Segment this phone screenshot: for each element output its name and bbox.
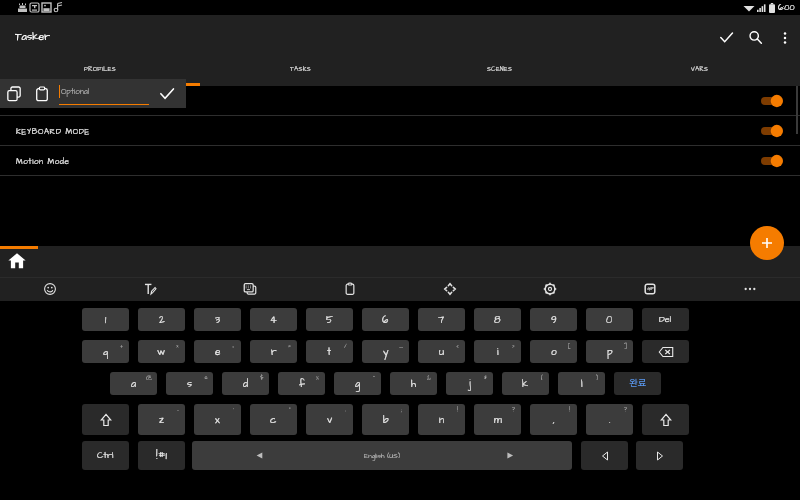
button[interactable]: l <box>558 372 605 395</box>
button[interactable]: v <box>306 404 353 435</box>
staticText: 2 <box>159 313 165 327</box>
button[interactable]: 2 <box>138 308 185 331</box>
staticText: @ <box>146 374 153 382</box>
staticText: % <box>316 374 320 382</box>
button[interactable]: gif <box>600 278 700 300</box>
button[interactable]: settings <box>500 278 600 300</box>
button[interactable]: Paste <box>33 85 51 103</box>
button[interactable]: s <box>166 372 213 395</box>
staticText: . <box>609 413 611 427</box>
staticText: o <box>551 345 557 359</box>
staticText: < <box>456 342 459 350</box>
button[interactable]: x <box>194 404 241 435</box>
button[interactable]: . <box>586 404 633 435</box>
button[interactable]: t <box>306 340 353 363</box>
button[interactable]: f <box>278 372 325 395</box>
button[interactable]: Copy <box>5 85 23 103</box>
button[interactable]: More options <box>770 23 799 52</box>
staticText: ^ <box>373 374 375 382</box>
button[interactable]: !#1 <box>138 441 185 470</box>
button[interactable]: Confirm <box>158 85 176 103</box>
button[interactable]: g <box>334 372 381 395</box>
button[interactable]: VARS <box>600 60 800 86</box>
button[interactable]: h <box>390 372 437 395</box>
staticText: 7 <box>438 313 445 327</box>
staticText: : <box>345 406 347 414</box>
staticText: = <box>288 342 291 350</box>
staticText: u <box>439 345 445 359</box>
button[interactable]: , <box>530 404 577 435</box>
staticText: g <box>355 377 361 391</box>
button[interactable]: Space <box>192 441 572 470</box>
button[interactable]: move <box>400 278 500 300</box>
button[interactable]: PROFILES <box>0 60 200 86</box>
button[interactable]: a <box>110 372 157 395</box>
button[interactable]: m <box>474 404 521 435</box>
button[interactable]: SCENES <box>400 60 600 86</box>
button[interactable]: r <box>250 340 297 363</box>
button[interactable]: 6 <box>362 308 409 331</box>
button[interactable]: Ctrl <box>82 441 129 470</box>
button[interactable]: TASKS <box>200 60 400 86</box>
button[interactable]: emoji <box>0 278 100 300</box>
button[interactable]: Home <box>6 249 28 271</box>
button[interactable]: KEYBOARD MODE <box>0 116 800 146</box>
staticText: TASKS <box>290 65 311 73</box>
button[interactable]: more <box>700 278 800 300</box>
button[interactable]: Done <box>712 23 741 52</box>
button[interactable]: 8 <box>474 308 521 331</box>
button[interactable]: 0 <box>586 308 633 331</box>
button[interactable]: 4 <box>250 308 297 331</box>
button[interactable]: handwrite <box>100 278 200 300</box>
button[interactable]: e <box>194 340 241 363</box>
staticText: $ <box>260 374 264 382</box>
button[interactable]: 3 <box>194 308 241 331</box>
staticText: t <box>327 345 332 359</box>
button[interactable]: w <box>138 340 185 363</box>
button[interactable]: b <box>362 404 409 435</box>
button[interactable] <box>642 404 689 435</box>
button[interactable]: 5 <box>306 308 353 331</box>
staticText: [ <box>568 342 571 350</box>
button[interactable] <box>82 404 129 435</box>
staticText: ' <box>233 406 234 414</box>
button[interactable]: 7 <box>418 308 465 331</box>
staticText: KEYBOARD MODE <box>16 126 90 137</box>
button[interactable]: clipstack <box>200 278 300 300</box>
button[interactable]: Right <box>636 441 683 470</box>
button[interactable]: c <box>250 404 297 435</box>
button[interactable]: Search <box>741 23 770 52</box>
staticText: f <box>299 377 305 391</box>
staticText: " <box>289 406 291 414</box>
staticText: English (US) <box>364 451 401 461</box>
button[interactable]: j <box>446 372 493 395</box>
staticText: j <box>469 377 471 391</box>
button[interactable]: y <box>362 340 409 363</box>
button[interactable]: z <box>138 404 185 435</box>
button[interactable]: d <box>222 372 269 395</box>
staticText: - <box>177 406 179 414</box>
button[interactable]: u <box>418 340 465 363</box>
button[interactable]: clipboard <box>300 278 400 300</box>
button[interactable]: 1 <box>82 308 129 331</box>
button[interactable]: i <box>474 340 521 363</box>
staticText: ] <box>624 342 628 350</box>
button[interactable]: q <box>82 340 129 363</box>
button[interactable]: Del <box>642 308 689 331</box>
staticText: n <box>439 413 444 427</box>
button[interactable]: Motion Mode <box>0 146 800 176</box>
button[interactable]: o <box>530 340 577 363</box>
staticText: 9 <box>551 313 557 327</box>
button[interactable]: 완료 <box>614 372 661 395</box>
button[interactable]: p <box>586 340 633 363</box>
button[interactable] <box>0 86 800 116</box>
staticText: y <box>383 345 389 359</box>
button[interactable] <box>642 340 689 363</box>
button[interactable]: k <box>502 372 549 395</box>
button[interactable]: n <box>418 404 465 435</box>
button[interactable]: 9 <box>530 308 577 331</box>
button[interactable]: Add <box>750 226 784 260</box>
staticText: Motion Mode <box>16 156 70 167</box>
staticText: 5 <box>326 313 334 327</box>
button[interactable]: Left <box>581 441 628 470</box>
